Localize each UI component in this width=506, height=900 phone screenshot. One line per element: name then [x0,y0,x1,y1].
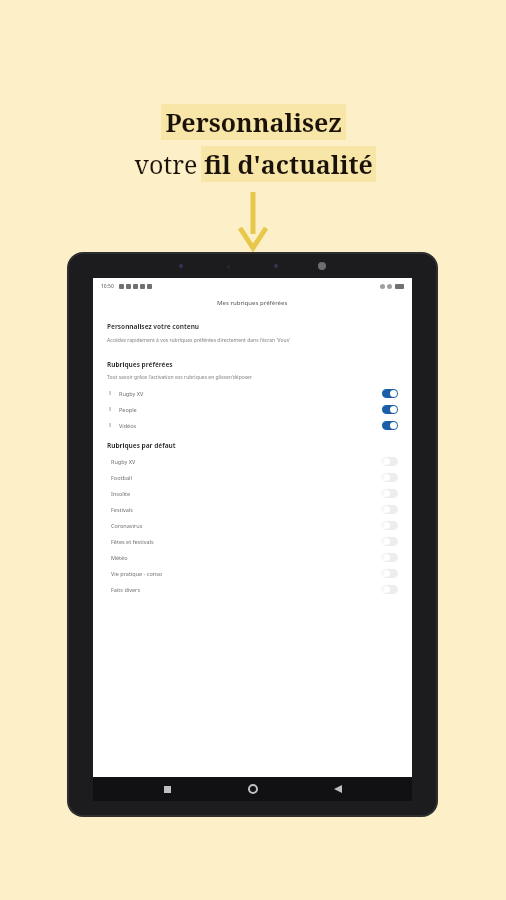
staticText: Rubriques par défaut [107,441,176,450]
button[interactable]: Off [382,537,398,546]
button[interactable]: Festivals [107,501,398,517]
button[interactable]: Off [382,521,398,530]
staticText: Tout savoir grâce l'activation vos rubri… [107,374,253,381]
staticText: Personnalisez votre contenu [107,322,200,331]
button[interactable]: Météo [107,549,398,565]
button[interactable]: Rugby XV [107,385,398,401]
staticText: Météo [111,554,128,561]
staticText: Faits divers [111,586,141,593]
button[interactable]: Off [382,457,398,466]
staticText: Coronavirus [111,522,143,529]
button[interactable]: On [382,405,398,414]
staticText: Insolite [111,490,131,497]
staticText: Mes rubriques préférées [217,299,288,307]
button[interactable]: Home [242,778,264,800]
staticText: Vidéos [119,422,137,429]
staticText: Vie pratique - conso [111,570,163,577]
button[interactable]: Rugby XV [107,453,398,469]
staticText: 10:50 [101,283,114,290]
staticText: fil d'actualité [204,147,373,181]
staticText: Rugby XV [111,458,136,465]
button[interactable]: Fêtes et festivals [107,533,398,549]
staticText: People [119,406,137,413]
button[interactable]: Vie pratique - conso [107,565,398,581]
button[interactable]: Insolite [107,485,398,501]
staticText: Festivals [111,506,133,513]
button[interactable]: On [382,389,398,398]
staticText: Accédez rapidement à vos rubriques préfé… [107,337,291,344]
staticText: Rugby XV [119,390,144,397]
button[interactable]: People [107,401,398,417]
button[interactable]: Off [382,585,398,594]
button[interactable]: Off [382,505,398,514]
button[interactable]: Off [382,473,398,482]
button[interactable]: Recent apps [156,778,178,800]
button[interactable]: Off [382,569,398,578]
staticText: votre [131,147,201,181]
button[interactable]: Off [382,489,398,498]
staticText: Fêtes et festivals [111,538,154,545]
staticText: Football [111,474,132,481]
button[interactable]: Off [382,553,398,562]
staticText: Rubriques préférées [107,360,173,369]
staticText: Personnalisez [165,105,342,139]
button[interactable]: Faits divers [107,581,398,597]
button[interactable]: Coronavirus [107,517,398,533]
button[interactable]: On [382,421,398,430]
button[interactable]: Football [107,469,398,485]
button[interactable]: Vidéos [107,417,398,433]
button[interactable]: Back [327,778,349,800]
